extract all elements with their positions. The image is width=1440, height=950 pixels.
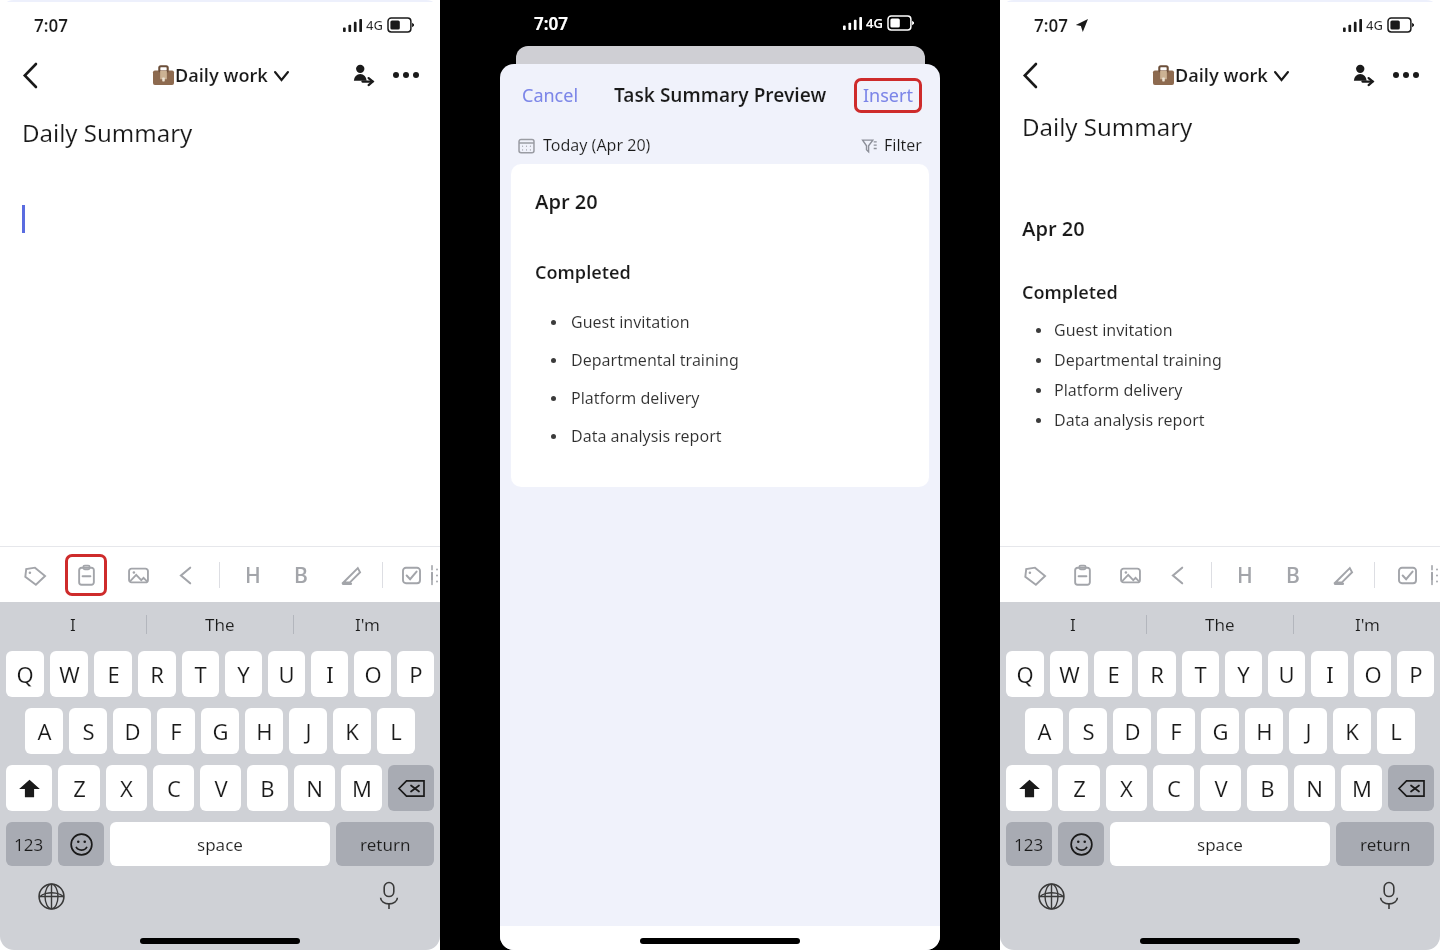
button[interactable]: I xyxy=(1000,602,1146,646)
button[interactable]: N xyxy=(1294,765,1335,811)
button[interactable]: B xyxy=(247,765,288,811)
button[interactable]: M xyxy=(341,765,382,811)
button[interactable]: Heading xyxy=(236,558,270,592)
button[interactable]: Highlighter xyxy=(332,558,366,592)
button[interactable]: Emoji xyxy=(1058,822,1104,866)
button[interactable]: Task summary xyxy=(65,554,107,596)
button[interactable]: Change keyboard xyxy=(1032,877,1070,915)
button[interactable]: U xyxy=(1268,651,1305,697)
button[interactable]: Bold xyxy=(284,558,318,592)
button[interactable]: N xyxy=(294,765,335,811)
button[interactable]: Task summary xyxy=(1065,558,1099,592)
button[interactable]: Image xyxy=(1113,558,1147,592)
button[interactable]: I xyxy=(0,602,146,646)
button[interactable]: 123 xyxy=(6,822,52,866)
button[interactable]: Daily work xyxy=(153,63,288,88)
button[interactable]: Delete xyxy=(1388,765,1434,811)
button[interactable]: F xyxy=(157,708,195,754)
button[interactable]: A xyxy=(1025,708,1063,754)
button[interactable]: L xyxy=(1377,708,1415,754)
button[interactable]: B xyxy=(1247,765,1288,811)
button[interactable]: G xyxy=(1201,708,1239,754)
button[interactable]: H xyxy=(1245,708,1283,754)
button[interactable]: Cancel xyxy=(522,83,579,108)
button[interactable]: R xyxy=(138,651,176,697)
button[interactable]: T xyxy=(182,651,219,697)
button[interactable]: O xyxy=(1354,651,1391,697)
button[interactable]: Dictate xyxy=(1370,877,1408,915)
button[interactable]: W xyxy=(50,651,88,697)
button[interactable]: More options xyxy=(1386,55,1426,95)
button[interactable]: Today (Apr 20) xyxy=(518,134,651,156)
button[interactable]: return xyxy=(336,822,434,866)
button[interactable]: K xyxy=(333,708,371,754)
button[interactable]: P xyxy=(397,651,434,697)
button[interactable]: Collapse xyxy=(1161,558,1195,592)
button[interactable]: H xyxy=(245,708,283,754)
button[interactable]: The xyxy=(1147,602,1293,646)
button[interactable]: V xyxy=(1200,765,1241,811)
button[interactable]: space xyxy=(110,822,330,866)
button[interactable]: Tag xyxy=(1017,558,1051,592)
button[interactable]: Emoji xyxy=(58,822,104,866)
button[interactable]: T xyxy=(1182,651,1219,697)
button[interactable]: Insert xyxy=(863,83,913,108)
button[interactable]: P xyxy=(1397,651,1434,697)
button[interactable]: I xyxy=(311,651,348,697)
button[interactable]: K xyxy=(1333,708,1371,754)
button[interactable]: U xyxy=(268,651,305,697)
button[interactable]: Shift xyxy=(1006,765,1052,811)
button[interactable]: S xyxy=(1069,708,1107,754)
button[interactable]: Bold xyxy=(1276,558,1310,592)
button[interactable]: C xyxy=(1153,765,1194,811)
button[interactable]: E xyxy=(94,651,132,697)
button[interactable]: 123 xyxy=(1006,822,1052,866)
button[interactable]: G xyxy=(201,708,239,754)
button[interactable]: Shift xyxy=(6,765,52,811)
button[interactable]: I xyxy=(1311,651,1348,697)
button[interactable]: return xyxy=(1336,822,1434,866)
button[interactable]: Checklist xyxy=(399,558,423,592)
button[interactable]: A xyxy=(25,708,63,754)
button[interactable]: Y xyxy=(225,651,262,697)
button[interactable]: Change keyboard xyxy=(32,877,70,915)
button[interactable]: X xyxy=(1106,765,1147,811)
button[interactable]: D xyxy=(113,708,151,754)
button[interactable]: X xyxy=(106,765,147,811)
button[interactable]: Back xyxy=(1008,53,1052,97)
button[interactable]: L xyxy=(377,708,415,754)
button[interactable]: More options xyxy=(386,55,426,95)
button[interactable]: Heading xyxy=(1228,558,1262,592)
button[interactable]: Checklist xyxy=(1391,558,1423,592)
button[interactable]: W xyxy=(1050,651,1088,697)
button[interactable]: D xyxy=(1113,708,1151,754)
button[interactable]: F xyxy=(1157,708,1195,754)
button[interactable]: J xyxy=(1289,708,1327,754)
button[interactable]: I'm xyxy=(1294,602,1440,646)
button[interactable]: space xyxy=(1110,822,1330,866)
button[interactable]: Share with person xyxy=(1342,55,1382,95)
button[interactable]: M xyxy=(1341,765,1382,811)
button[interactable]: I'm xyxy=(294,602,440,646)
button[interactable]: S xyxy=(69,708,107,754)
button[interactable]: J xyxy=(289,708,327,754)
button[interactable]: Back xyxy=(8,53,52,97)
button[interactable]: Z xyxy=(58,765,100,811)
button[interactable]: Daily work xyxy=(1153,63,1288,88)
button[interactable]: C xyxy=(153,765,194,811)
button[interactable]: Share with person xyxy=(342,55,382,95)
button[interactable]: The xyxy=(147,602,293,646)
button[interactable]: V xyxy=(200,765,241,811)
button[interactable]: Q xyxy=(1006,651,1044,697)
button[interactable]: Z xyxy=(1058,765,1100,811)
button[interactable]: Tag xyxy=(17,558,51,592)
button[interactable]: R xyxy=(1138,651,1176,697)
button[interactable]: Filter xyxy=(862,134,922,156)
button[interactable]: O xyxy=(354,651,391,697)
button[interactable]: Collapse xyxy=(169,558,203,592)
button[interactable]: E xyxy=(1094,651,1132,697)
button[interactable]: Delete xyxy=(388,765,434,811)
button[interactable]: Dictate xyxy=(370,877,408,915)
button[interactable]: Q xyxy=(6,651,44,697)
button[interactable]: Image xyxy=(121,558,155,592)
